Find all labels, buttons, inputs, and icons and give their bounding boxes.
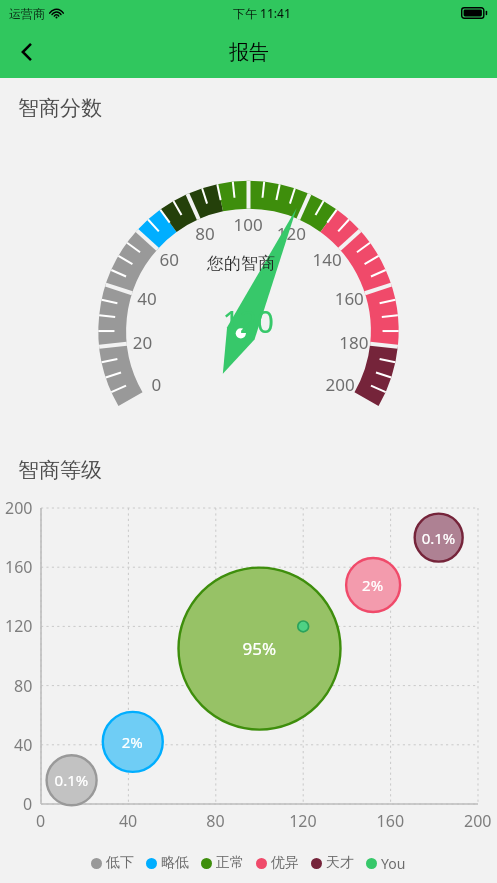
staticText: 运营商 [9, 6, 45, 21]
button[interactable]: 正常 [195, 854, 250, 872]
staticText: 下午 11:41 [233, 5, 291, 21]
staticText: 正常 [216, 854, 244, 872]
button[interactable]: You [360, 854, 412, 873]
staticText: 优异 [271, 854, 299, 872]
button[interactable]: 优异 [250, 854, 305, 872]
staticText: 报告 [229, 40, 269, 65]
staticText: 智商分数 [18, 95, 102, 121]
button[interactable]: 天才 [305, 854, 360, 872]
staticText: 智商等级 [18, 457, 102, 483]
button[interactable]: Back [4, 29, 50, 75]
button[interactable]: 低下 [85, 854, 140, 872]
staticText: 略低 [161, 854, 189, 872]
button[interactable]: 略低 [140, 854, 195, 872]
staticText: You [381, 854, 406, 873]
staticText: 低下 [106, 854, 134, 872]
staticText: 天才 [326, 854, 354, 872]
